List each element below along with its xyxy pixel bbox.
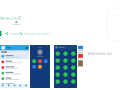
- staticText: Asistencia de la a: [88, 52, 111, 55]
- button[interactable]: Agregar a contactos: [19, 31, 50, 36]
- staticText: Mensajes VoIP: [0, 17, 21, 20]
- button[interactable]: Compartir: [5, 31, 22, 36]
- staticText: Compartir: [9, 32, 22, 35]
- staticText: Agregar a contactos: [24, 32, 50, 35]
